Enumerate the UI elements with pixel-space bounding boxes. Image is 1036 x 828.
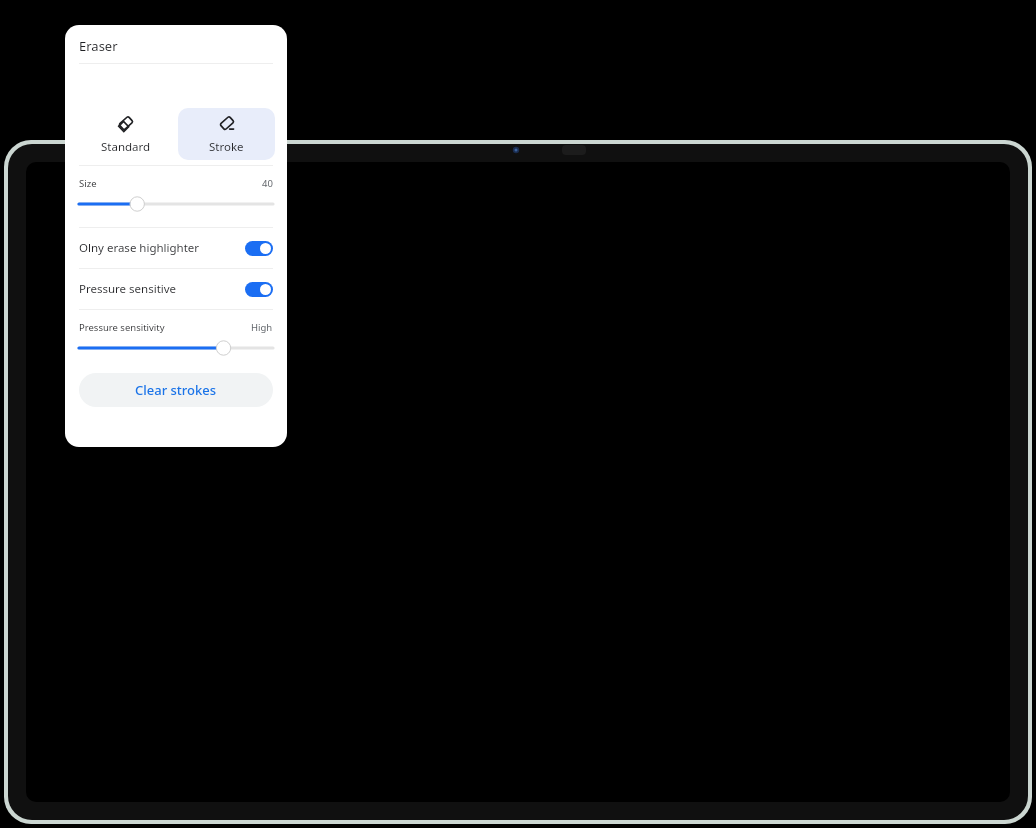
button[interactable] xyxy=(79,341,273,355)
staticText: Eraser xyxy=(79,37,118,55)
staticText: Size xyxy=(79,177,97,190)
staticText: 40 xyxy=(262,177,273,190)
staticText: Pressure sensitive xyxy=(79,281,245,297)
other: Standard xyxy=(115,113,137,135)
staticText: Standard xyxy=(101,139,151,155)
button[interactable] xyxy=(79,197,273,211)
other: Stroke xyxy=(216,113,238,135)
button[interactable]: Pressure sensitive xyxy=(79,269,273,309)
staticText: Clear strokes xyxy=(135,381,217,399)
staticText: Olny erase highlighter xyxy=(79,240,245,256)
staticText: High xyxy=(251,321,273,334)
button[interactable]: Stroke xyxy=(178,108,275,160)
button[interactable]: Clear strokes xyxy=(79,373,273,407)
staticText: Pressure sensitivity xyxy=(79,321,165,334)
button[interactable]: Standard xyxy=(77,108,174,160)
staticText: Stroke xyxy=(209,139,244,155)
button[interactable]: Olny erase highlighter xyxy=(79,228,273,268)
